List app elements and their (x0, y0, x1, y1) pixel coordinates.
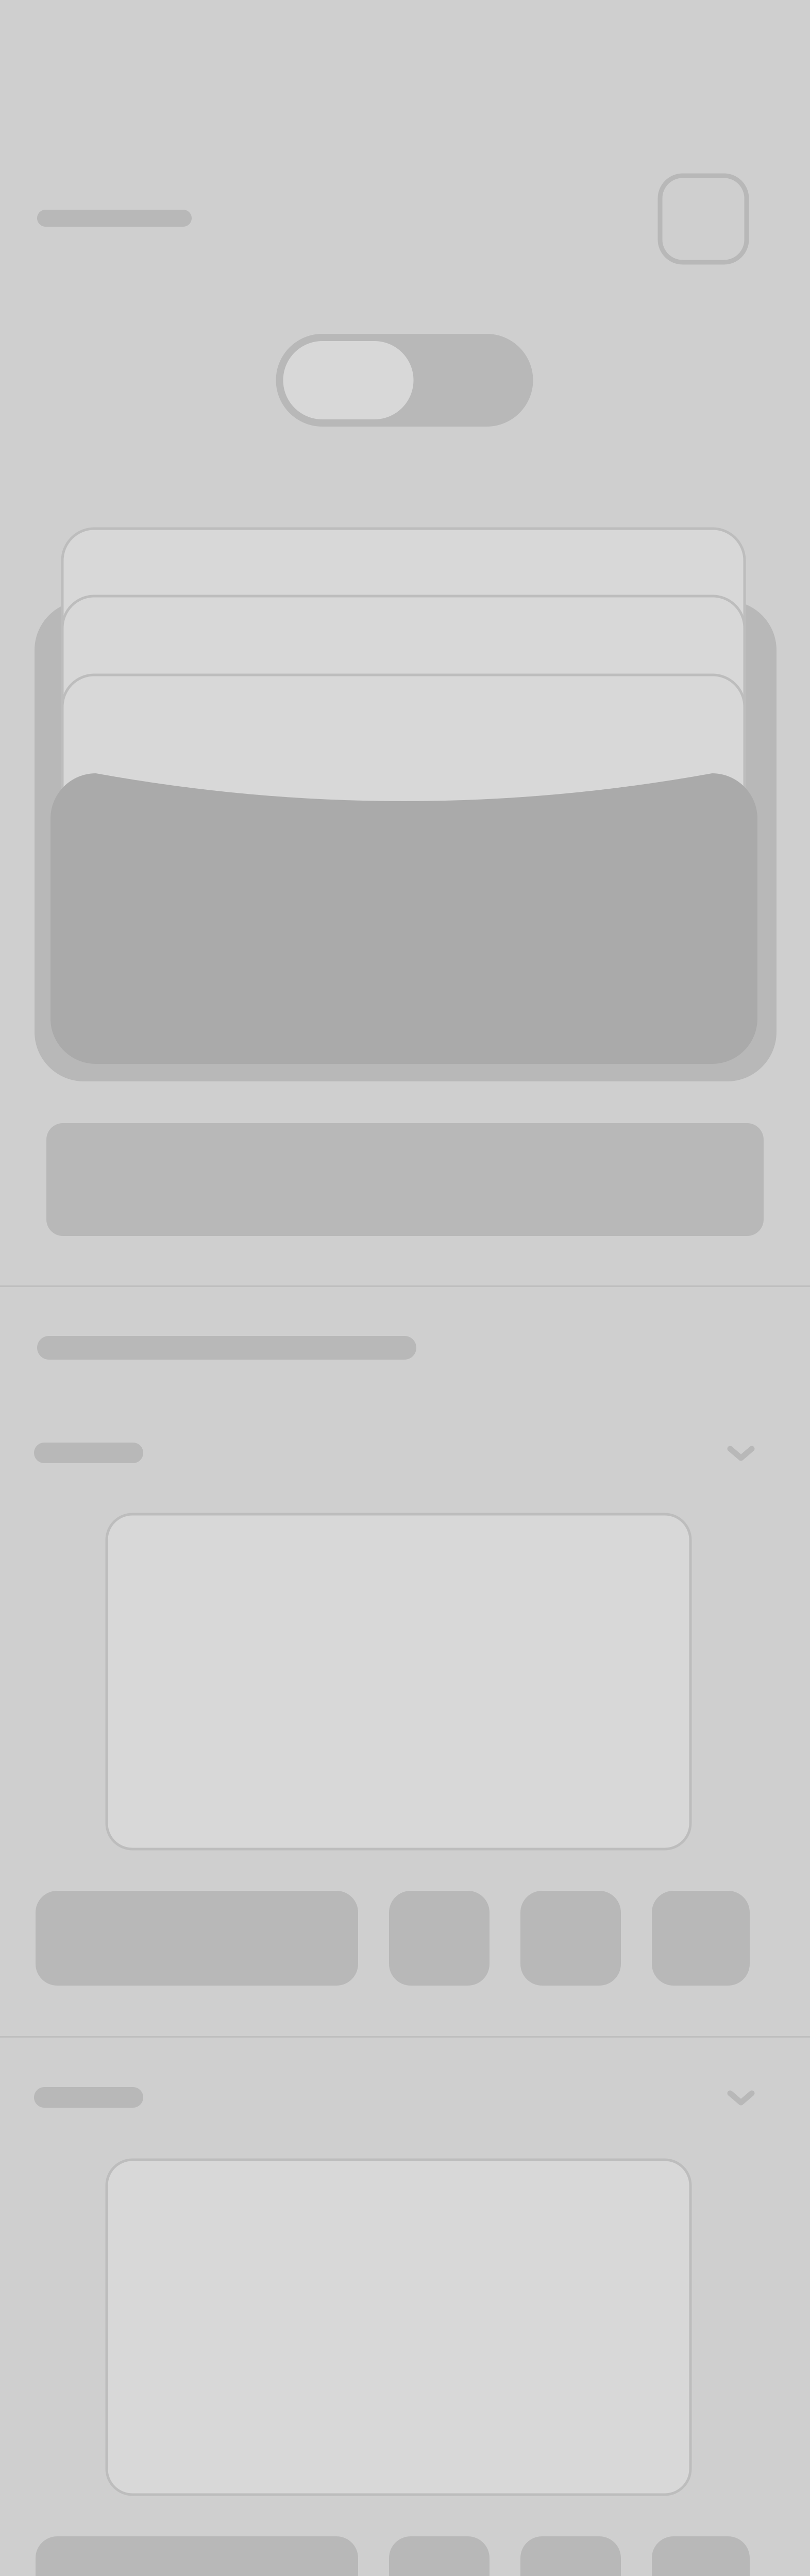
button[interactable]: Segmented control (276, 334, 533, 427)
